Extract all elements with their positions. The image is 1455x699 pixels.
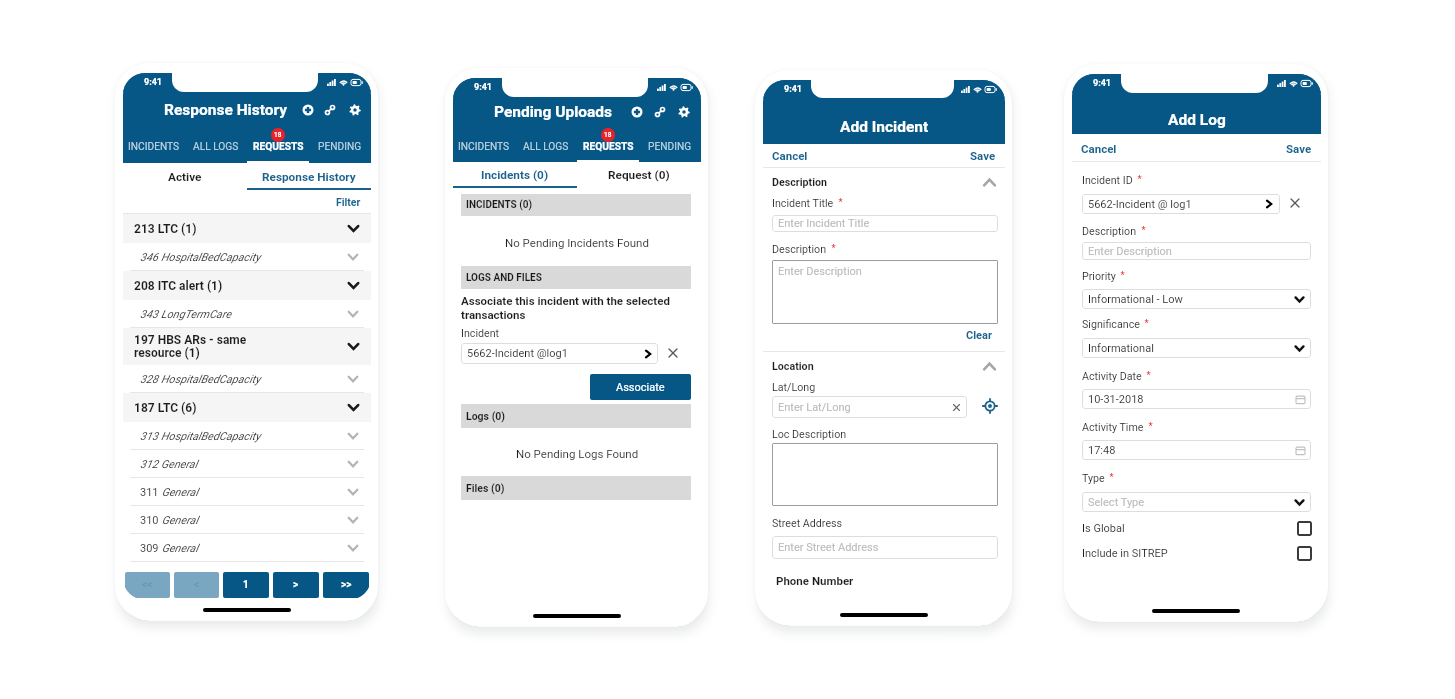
staticText: INCIDENTS (0) xyxy=(466,199,533,211)
button[interactable]: Add xyxy=(631,106,643,118)
button[interactable]: 5662-Incident @log1 xyxy=(461,343,658,364)
staticText: Description xyxy=(1082,225,1137,238)
staticText: Save xyxy=(970,149,996,162)
button[interactable]: >> xyxy=(323,572,369,598)
button[interactable]: Save xyxy=(958,144,1005,167)
button[interactable]: 208 ITC alert (1) xyxy=(123,271,371,300)
staticText: 328 xyxy=(140,373,161,386)
staticText: Description xyxy=(772,176,828,189)
staticText: Files (0) xyxy=(466,482,505,494)
button[interactable]: 312 xyxy=(123,450,371,478)
staticText: 313 xyxy=(140,430,161,443)
button[interactable]: Link xyxy=(654,106,666,118)
staticText: 187 LTC (6) xyxy=(134,401,197,415)
staticText: Cancel xyxy=(772,149,808,162)
staticText: 5662-Incident @ log1 xyxy=(1088,198,1192,211)
button[interactable]: Enter Description xyxy=(772,260,998,324)
button[interactable]: 10-31-2018 xyxy=(1082,389,1311,409)
staticText: 343 xyxy=(140,308,161,321)
button[interactable]: PENDING xyxy=(309,127,371,163)
button[interactable]: Include in SITREP xyxy=(1072,541,1321,566)
button[interactable]: Filter xyxy=(332,192,365,212)
staticText: Response History xyxy=(262,170,356,184)
button[interactable]: 328 xyxy=(123,365,371,393)
button[interactable]: Response History xyxy=(247,163,371,190)
button[interactable]: REQUESTS xyxy=(247,127,309,163)
button[interactable]: Clear incident xyxy=(1289,197,1301,209)
button[interactable]: << xyxy=(125,572,170,598)
button[interactable]: 187 LTC (6) xyxy=(123,393,371,422)
button[interactable]: 17:48 xyxy=(1082,440,1311,460)
button[interactable]: Add xyxy=(302,104,314,116)
staticText: General xyxy=(161,458,198,471)
button[interactable]: Link xyxy=(324,104,336,116)
staticText: Enter Street Address xyxy=(778,541,879,554)
staticText: Description xyxy=(772,243,827,256)
button[interactable]: 197 HBS ARs - same resource (1) xyxy=(123,328,371,365)
button[interactable]: Active xyxy=(123,163,247,190)
button[interactable]: ALL LOGS xyxy=(515,127,577,162)
button[interactable]: Use current location xyxy=(983,399,997,413)
staticText: 311 xyxy=(140,486,159,499)
button[interactable]: Informational - Low xyxy=(1082,289,1311,309)
staticText: Filter xyxy=(336,196,361,208)
button[interactable]: 346 xyxy=(123,243,371,271)
button[interactable]: < xyxy=(174,572,219,598)
button[interactable]: Clear incident xyxy=(667,347,679,359)
button[interactable]: PENDING xyxy=(639,127,701,162)
staticText: Loc Description xyxy=(772,428,847,441)
staticText: Significance xyxy=(1082,318,1140,331)
button[interactable]: 1 xyxy=(223,572,269,598)
staticText: * xyxy=(1137,225,1146,236)
button[interactable]: Incidents (0) xyxy=(453,162,577,188)
staticText: 5662-Incident @log1 xyxy=(467,347,568,360)
staticText: No Pending Incidents Found xyxy=(505,236,649,249)
button[interactable]: Save xyxy=(1274,134,1321,162)
staticText: Add Log xyxy=(1168,111,1226,129)
button[interactable]: 310 xyxy=(123,506,371,534)
button[interactable] xyxy=(772,443,998,506)
button[interactable]: Description xyxy=(763,173,1005,191)
button[interactable]: Informational xyxy=(1082,338,1311,358)
staticText: * xyxy=(1140,318,1149,329)
staticText: Activity Time xyxy=(1082,421,1144,434)
button[interactable]: 311 xyxy=(123,478,371,506)
staticText: Street Address xyxy=(772,517,843,530)
button[interactable]: Enter Incident Title xyxy=(772,215,998,232)
button[interactable]: Clear xyxy=(962,325,996,346)
button[interactable]: Enter Lat/Long xyxy=(772,396,967,418)
staticText: Associate this incident with the selecte… xyxy=(461,294,670,322)
button[interactable]: INCIDENTS xyxy=(453,127,515,162)
staticText: Informational - Low xyxy=(1088,293,1183,306)
button[interactable]: ALL LOGS xyxy=(185,127,247,163)
staticText: ALL LOGS xyxy=(523,141,569,153)
button[interactable]: Settings xyxy=(349,104,361,116)
staticText: 10-31-2018 xyxy=(1088,393,1144,406)
staticText: LOGS AND FILES xyxy=(466,272,542,284)
button[interactable]: Enter Description xyxy=(1082,242,1311,260)
button[interactable]: 5662-Incident @ log1 xyxy=(1082,194,1280,214)
button[interactable]: Settings xyxy=(678,106,690,118)
button[interactable]: Enter Street Address xyxy=(772,536,998,559)
staticText: No Pending Logs Found xyxy=(516,447,639,460)
button[interactable]: Is Global xyxy=(1072,516,1321,541)
button[interactable]: Select Type xyxy=(1082,492,1311,512)
button[interactable]: INCIDENTS xyxy=(123,127,185,163)
button[interactable]: Cancel xyxy=(763,144,820,167)
button[interactable]: Location xyxy=(763,357,1005,375)
button[interactable]: 313 xyxy=(123,422,371,450)
button[interactable]: REQUESTS xyxy=(577,127,639,162)
staticText: Response History xyxy=(164,101,288,119)
button[interactable]: > xyxy=(273,572,319,598)
button[interactable]: Associate xyxy=(590,374,691,400)
staticText: Activity Date xyxy=(1082,370,1142,383)
staticText: Priority xyxy=(1082,270,1116,283)
button[interactable]: 343 xyxy=(123,300,371,328)
staticText: * xyxy=(1105,472,1114,483)
button[interactable]: Cancel xyxy=(1072,134,1129,162)
staticText: 312 xyxy=(140,458,161,471)
button[interactable]: Request (0) xyxy=(577,162,701,188)
staticText: 208 ITC alert (1) xyxy=(134,279,223,293)
button[interactable]: 309 xyxy=(123,534,371,562)
button[interactable]: 213 LTC (1) xyxy=(123,214,371,243)
